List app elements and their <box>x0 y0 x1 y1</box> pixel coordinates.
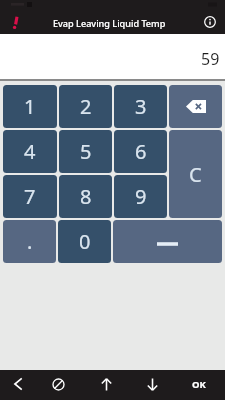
button[interactable]: Decrease <box>133 369 171 399</box>
staticText: 1 <box>24 93 36 120</box>
staticText: . <box>27 228 33 255</box>
button[interactable]: 1 <box>3 85 57 128</box>
staticText: Evap Leaving Liquid Temp <box>53 17 166 29</box>
staticText: 2 <box>80 93 92 120</box>
button[interactable]: 4 <box>3 130 57 173</box>
button[interactable]: 6 <box>114 130 167 173</box>
button[interactable]: 7 <box>3 175 57 218</box>
button[interactable] <box>169 85 222 128</box>
button[interactable]: Back <box>0 369 37 399</box>
button[interactable]: Cancel <box>39 369 77 399</box>
staticText: OK <box>192 378 206 391</box>
staticText: 0 <box>79 228 91 255</box>
button[interactable]: 5 <box>59 130 112 173</box>
staticText: C <box>189 161 202 188</box>
button[interactable]: . <box>3 220 56 263</box>
staticText: 9 <box>135 183 147 210</box>
button[interactable]: 8 <box>59 175 112 218</box>
staticText: 7 <box>24 183 36 210</box>
staticText: 5 <box>80 138 92 165</box>
button[interactable]: 0 <box>58 220 111 263</box>
staticText: 8 <box>80 183 92 210</box>
button[interactable]: Increase <box>87 369 125 399</box>
staticText: 3 <box>135 93 147 120</box>
button[interactable]: 9 <box>114 175 167 218</box>
button[interactable]: 3 <box>114 85 167 128</box>
button[interactable]: Info <box>196 8 224 36</box>
button[interactable]: 2 <box>59 85 112 128</box>
staticText: 59 <box>201 48 220 70</box>
button[interactable] <box>113 220 222 263</box>
staticText: 4 <box>24 138 36 165</box>
staticText: 6 <box>135 138 147 165</box>
button[interactable]: C <box>169 130 222 218</box>
button[interactable]: OK <box>180 369 218 399</box>
